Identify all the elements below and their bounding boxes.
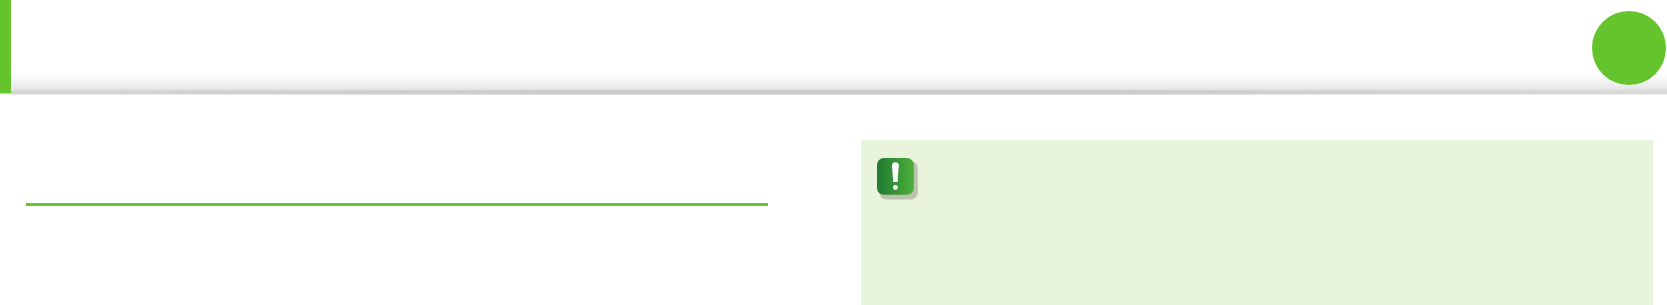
button[interactable]: Chapter badge (1592, 11, 1666, 85)
button[interactable]: Important note (877, 158, 917, 198)
